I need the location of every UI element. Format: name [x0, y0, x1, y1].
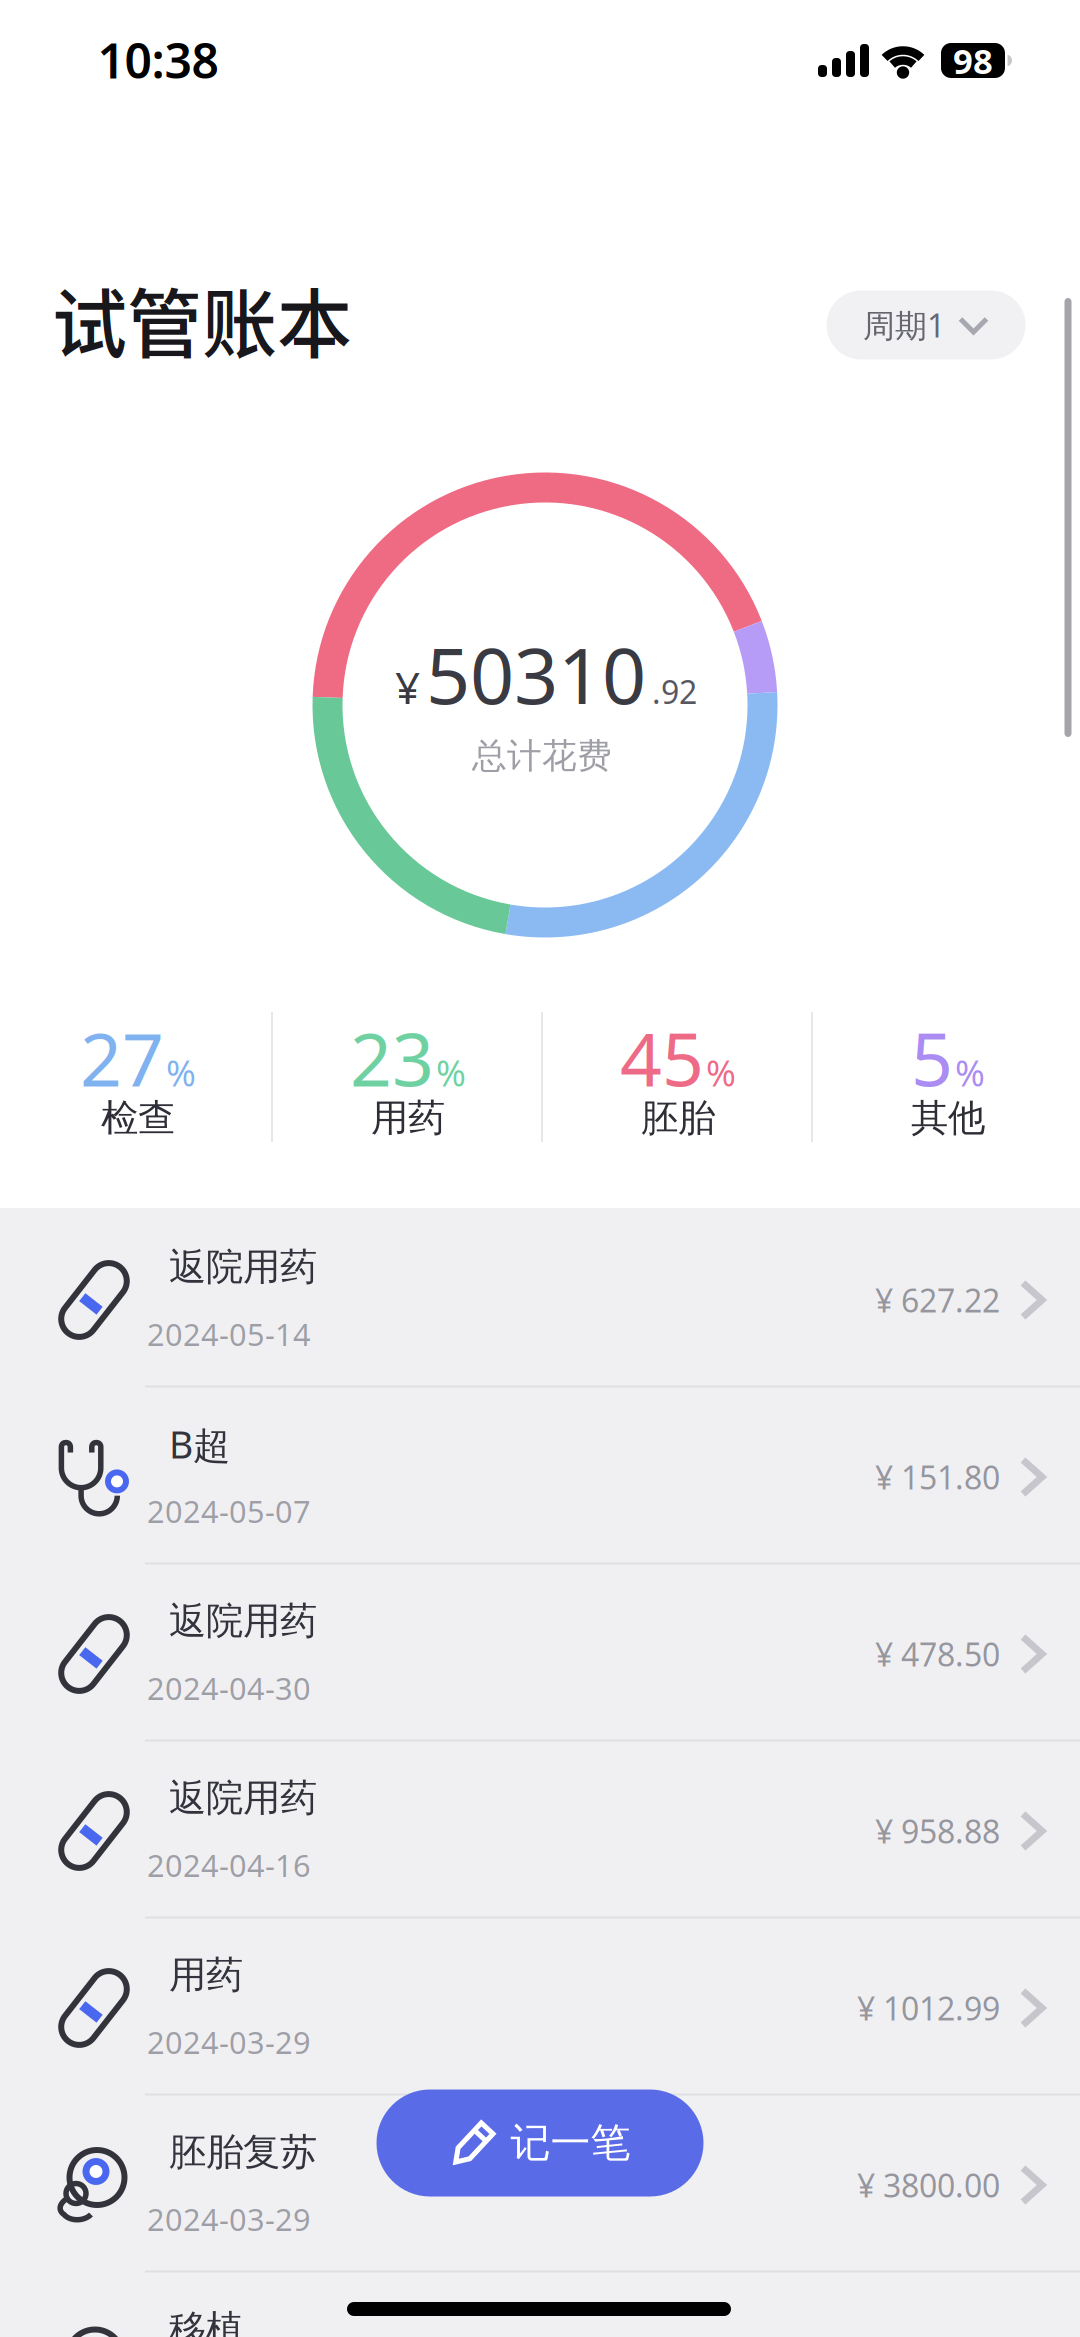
staticText: ¥ [395, 658, 420, 716]
staticText: % [955, 1049, 985, 1096]
staticText: 返院用药 [169, 1598, 317, 1644]
staticText: 98 [953, 37, 993, 83]
button[interactable]: B超 [0, 0, 1080, 2337]
staticText: 周期1 [863, 304, 945, 346]
staticText: ¥ 958.88 [875, 1810, 1000, 1852]
staticText: ¥ 627.22 [875, 1279, 1000, 1321]
staticText: B超 [169, 1419, 230, 1469]
staticText: 返院用药 [169, 1244, 317, 1290]
button[interactable]: 返院用药 [0, 0, 1080, 2337]
staticText: 2024-04-30 [147, 1668, 311, 1708]
staticText: 23 [350, 1009, 434, 1107]
staticText: 总计花费 [472, 735, 612, 777]
staticText: 试管账本 [52, 265, 352, 373]
button[interactable]: 返院用药 [0, 0, 1080, 2337]
staticText: 2024-03-29 [147, 2199, 311, 2239]
button[interactable]: 用药 [0, 0, 1080, 2337]
staticText: 胚胎复苏 [169, 2129, 317, 2175]
staticText: % [166, 1049, 196, 1096]
staticText: 用药 [371, 1095, 445, 1141]
button[interactable]: 记一笔 [376, 2089, 703, 2196]
staticText: 45 [620, 1009, 704, 1107]
staticText: 27 [80, 1009, 164, 1107]
button[interactable]: 返院用药 [0, 0, 1080, 2337]
staticText: 10:38 [97, 28, 218, 92]
staticText: 2024-04-16 [147, 1845, 311, 1885]
button[interactable]: 周期1 [826, 290, 1025, 359]
staticText: 用药 [169, 1952, 243, 1998]
staticText: ¥ 1012.99 [857, 1987, 1000, 2029]
staticText: 2024-05-07 [147, 1491, 311, 1531]
staticText: 记一笔 [510, 2118, 630, 2167]
staticText: .92 [652, 670, 697, 713]
staticText: ¥ 151.80 [875, 1456, 1000, 1498]
staticText: 移植 [169, 2306, 243, 2337]
button[interactable]: 移植 [0, 0, 1080, 2337]
button[interactable]: 胚胎复苏 [0, 0, 1080, 2337]
staticText: 胚胎 [641, 1095, 715, 1141]
staticText: ¥ 478.50 [875, 1633, 1000, 1675]
staticText: 5 [911, 1009, 953, 1107]
staticText: 返院用药 [169, 1775, 317, 1821]
staticText: 2024-05-14 [147, 1314, 311, 1354]
staticText: % [706, 1049, 736, 1096]
staticText: 50310 [426, 623, 646, 725]
staticText: ¥ 3800.00 [857, 2164, 1000, 2206]
staticText: 检查 [101, 1095, 175, 1141]
staticText: 其他 [911, 1095, 985, 1141]
staticText: 2024-03-29 [147, 2022, 311, 2062]
staticText: % [436, 1049, 466, 1096]
